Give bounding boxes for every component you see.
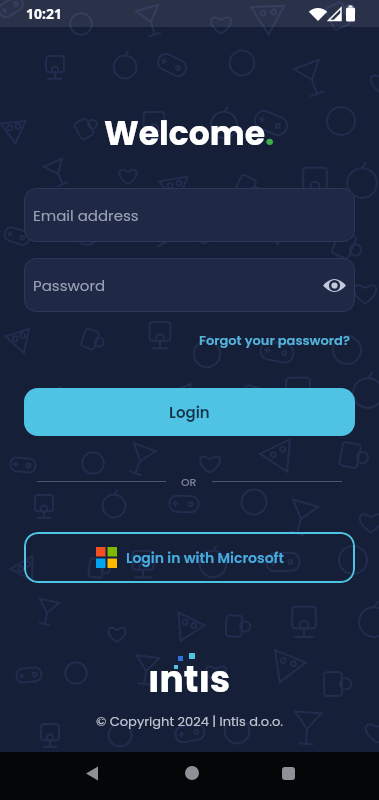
- button[interactable]: Password: [24, 258, 355, 312]
- staticText: Forgot your password?: [199, 331, 350, 349]
- staticText: Welcome.: [104, 110, 275, 156]
- staticText: Login in with Microsoft: [126, 548, 284, 568]
- button[interactable]: [282, 767, 295, 780]
- staticText: OR: [181, 474, 197, 489]
- button[interactable]: [85, 766, 100, 781]
- button[interactable]: Forgot your password?: [199, 331, 350, 349]
- staticText: Email address: [33, 205, 139, 226]
- staticText: ıntıs: [148, 654, 231, 704]
- staticText: © Copyright 2024 | Intis d.o.o.: [96, 712, 283, 730]
- staticText: Login: [169, 402, 210, 423]
- button[interactable]: [185, 766, 199, 780]
- button[interactable]: Login: [24, 388, 355, 436]
- staticText: Password: [33, 275, 106, 296]
- button[interactable]: Email address: [24, 188, 355, 242]
- staticText: 10:21: [26, 4, 62, 23]
- button[interactable]: Login in with Microsoft: [24, 532, 355, 583]
